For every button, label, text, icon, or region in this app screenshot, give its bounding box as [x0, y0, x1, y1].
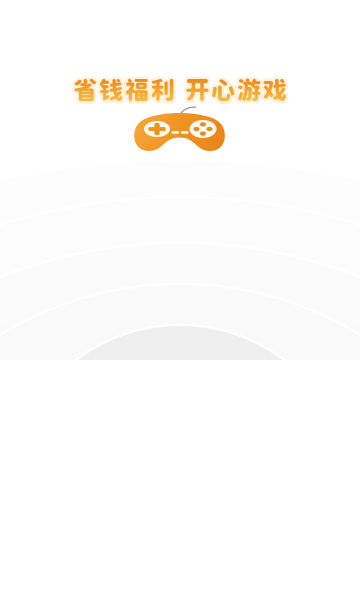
staticText: 省钱福利 开心游戏	[72, 76, 285, 104]
staticText: 省钱福利 开心游戏	[71, 74, 285, 102]
staticText: 省钱福利 开心游戏	[75, 74, 289, 102]
staticText: 省钱福利 开心游戏	[71, 78, 285, 106]
staticText: 省钱福利 开心游戏	[76, 76, 289, 104]
staticText: 省钱福利 开心游戏	[73, 77, 287, 105]
staticText: 省钱福利 开心游戏	[73, 74, 287, 103]
staticText: 省钱福利 开心游戏	[71, 76, 284, 104]
staticText: 省钱福利 开心游戏	[75, 78, 289, 106]
staticText: 省钱福利 开心游戏	[73, 73, 287, 101]
staticText: 省钱福利 开心游戏	[73, 78, 287, 107]
staticText: 省钱福利 开心游戏	[75, 76, 288, 104]
